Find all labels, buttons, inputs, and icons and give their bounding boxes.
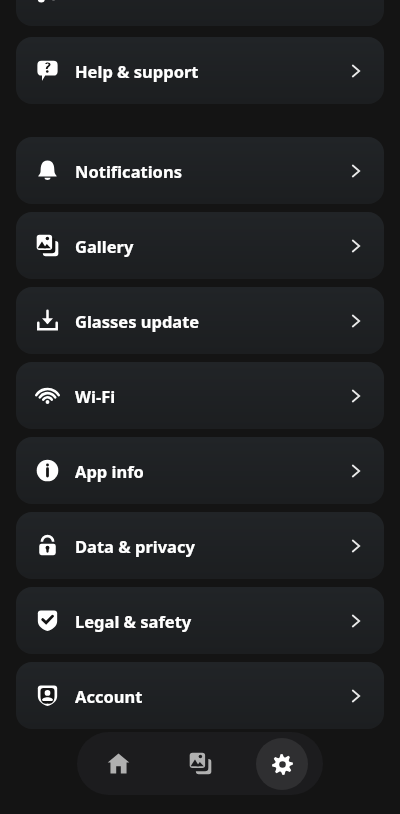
staticText: Notifications xyxy=(75,160,182,182)
button[interactable]: Wi-Fi xyxy=(16,362,384,429)
staticText: Account xyxy=(75,685,143,707)
button[interactable]: Settings xyxy=(241,732,323,795)
staticText: Glasses update xyxy=(75,310,200,332)
staticText: Legal & safety xyxy=(75,610,192,632)
button[interactable]: Notifications xyxy=(16,137,384,204)
button[interactable]: Gallery xyxy=(159,732,241,795)
button[interactable]: Music xyxy=(16,0,384,26)
staticText: Data & privacy xyxy=(75,535,195,557)
staticText: Gallery xyxy=(75,235,134,257)
staticText: App info xyxy=(75,460,144,482)
button[interactable]: Legal & safety xyxy=(16,587,384,654)
button[interactable]: Home xyxy=(77,732,159,795)
button[interactable]: Glasses update xyxy=(16,287,384,354)
button[interactable]: Gallery xyxy=(16,212,384,279)
staticText: Help & support xyxy=(75,60,199,82)
button[interactable]: App info xyxy=(16,437,384,504)
staticText: Wi-Fi xyxy=(75,385,116,407)
button[interactable]: Account xyxy=(16,662,384,729)
button[interactable]: Data & privacy xyxy=(16,512,384,579)
button[interactable]: Help & support xyxy=(16,37,384,104)
